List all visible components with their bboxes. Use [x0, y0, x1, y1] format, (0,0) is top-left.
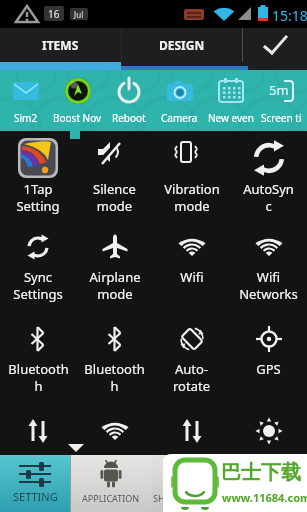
staticText: Vibration mode — [164, 180, 220, 215]
staticText: Wifi Networks — [239, 268, 298, 303]
button[interactable]: 1Tap Setting — [0, 131, 76, 223]
button[interactable]: Bluetooth h — [0, 315, 76, 407]
staticText: www.11684.com — [222, 490, 307, 505]
button[interactable]: Airplane mode — [76, 223, 153, 315]
button[interactable] — [243, 28, 307, 62]
staticText: APPLICATION — [82, 492, 140, 504]
button[interactable]: Vibration mode — [153, 131, 230, 223]
button[interactable]: Sync Settings — [0, 223, 76, 315]
button[interactable]: ITEMS — [0, 28, 121, 62]
staticText: Auto- rotate — [173, 360, 210, 395]
button[interactable]: GPS — [230, 315, 307, 407]
staticText: New even — [208, 111, 254, 125]
staticText: 1Tap Setting — [16, 180, 60, 215]
staticText: DESIGN — [159, 37, 205, 53]
staticText: Jul — [74, 9, 84, 20]
button[interactable]: 5m — [256, 70, 307, 131]
button[interactable]: Silence mode — [76, 131, 153, 223]
staticText: SETTING — [13, 489, 58, 504]
staticText: Camera — [161, 111, 198, 125]
staticText: Airplane mode — [89, 268, 141, 303]
staticText: SH — [153, 492, 165, 504]
button[interactable]: Bluetooth h — [76, 315, 153, 407]
button[interactable]: AutoSyn c — [230, 131, 307, 223]
staticText: 16 — [48, 7, 60, 21]
button[interactable] — [230, 407, 307, 448]
staticText: Sim2 — [14, 111, 38, 125]
button[interactable] — [0, 407, 76, 448]
button[interactable]: Wifi Networks — [230, 223, 307, 315]
staticText: Bluetooth h — [8, 360, 69, 395]
staticText: 15:18 — [272, 6, 307, 25]
button[interactable]: DESIGN — [122, 28, 242, 62]
button[interactable]: APPLICATION — [71, 455, 151, 512]
staticText: Wifi — [180, 268, 204, 286]
staticText: AutoSyn c — [243, 180, 294, 215]
staticText: ITEMS — [42, 37, 79, 53]
button[interactable] — [153, 407, 230, 448]
button[interactable]: Boost Nov — [52, 70, 103, 131]
button[interactable]: New even — [205, 70, 256, 131]
button[interactable]: Sim2 — [0, 70, 52, 131]
button[interactable] — [76, 407, 153, 448]
staticText: Bluetooth h — [84, 360, 145, 395]
staticText: Screen ti — [261, 111, 302, 125]
button[interactable]: SETTING — [0, 455, 70, 512]
staticText: 巴士下载 — [221, 460, 301, 485]
staticText: Reboot — [112, 111, 146, 125]
staticText: Silence mode — [93, 180, 136, 215]
button[interactable]: Wifi — [153, 223, 230, 315]
staticText: GPS — [256, 360, 281, 378]
button[interactable]: Auto- rotate — [153, 315, 230, 407]
button[interactable]: Camera — [154, 70, 205, 131]
button[interactable]: Reboot — [103, 70, 154, 131]
staticText: 5m — [269, 81, 289, 99]
staticText: Sync Settings — [13, 268, 63, 303]
button[interactable]: SH — [151, 455, 307, 512]
staticText: Boost Nov — [53, 111, 102, 125]
